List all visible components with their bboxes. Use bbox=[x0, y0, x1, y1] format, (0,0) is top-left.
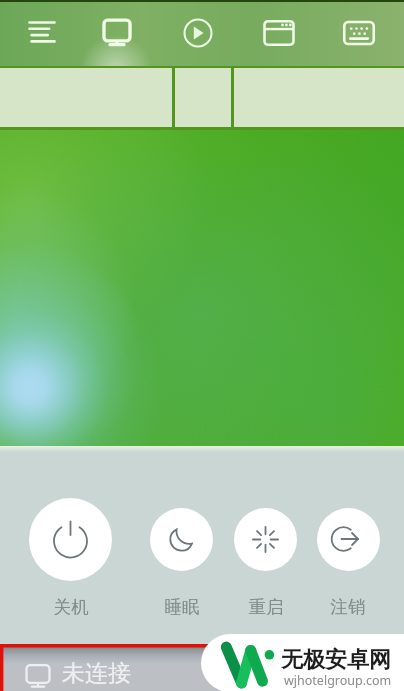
button[interactable]: Browser bbox=[258, 12, 300, 54]
button[interactable]: Media player bbox=[177, 12, 219, 54]
staticText: 未连接 bbox=[62, 659, 131, 688]
button[interactable] bbox=[150, 508, 213, 571]
staticText: wjhotelgroup.com bbox=[284, 672, 392, 689]
button[interactable]: Menu bbox=[21, 12, 63, 54]
staticText: 重启 bbox=[231, 596, 301, 618]
button[interactable] bbox=[234, 508, 297, 571]
button[interactable]: Desktop bbox=[96, 12, 138, 54]
staticText: 无极安卓网 bbox=[281, 646, 391, 674]
button[interactable] bbox=[29, 498, 112, 581]
staticText: 注销 bbox=[313, 596, 383, 618]
staticText: 关机 bbox=[36, 596, 106, 618]
button[interactable]: 未连接 bbox=[25, 662, 404, 691]
button[interactable] bbox=[317, 508, 380, 571]
button[interactable]: Keyboard bbox=[338, 12, 380, 54]
staticText: 睡眠 bbox=[147, 596, 217, 618]
